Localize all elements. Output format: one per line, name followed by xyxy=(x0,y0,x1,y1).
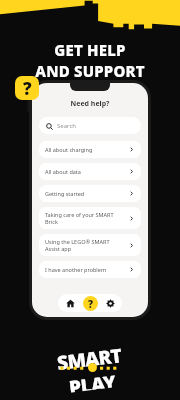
button[interactable]: All about data xyxy=(39,163,141,180)
button[interactable]: Help xyxy=(15,76,39,100)
button[interactable]: Taking care of your SMART xyxy=(39,207,141,229)
staticText: ? xyxy=(88,297,94,311)
staticText: Need help? xyxy=(32,99,148,109)
button[interactable]: I have another problem xyxy=(39,261,141,278)
button[interactable]: Getting started xyxy=(39,185,141,202)
button[interactable]: Using the LEGO® SMART xyxy=(39,234,141,256)
staticText: Brick xyxy=(45,218,58,225)
staticText: AND SUPPORT xyxy=(35,61,145,81)
staticText: All about data xyxy=(45,168,81,175)
staticText: Taking care of your SMART xyxy=(45,211,114,218)
button[interactable]: Search xyxy=(39,117,141,134)
staticText: Using the LEGO® SMART xyxy=(45,238,110,245)
staticText: Getting started xyxy=(45,190,85,197)
staticText: I have another problem xyxy=(45,266,107,273)
button[interactable]: Home xyxy=(62,295,78,311)
staticText: GET HELP xyxy=(54,40,126,60)
staticText: Assist app xyxy=(45,245,72,252)
staticText: ? xyxy=(23,77,32,100)
button[interactable]: Settings xyxy=(102,295,118,311)
staticText: PLAY xyxy=(68,369,116,393)
staticText: Search xyxy=(57,122,76,130)
staticText: SMART xyxy=(56,342,123,376)
button[interactable]: All about charging xyxy=(39,141,141,158)
button[interactable]: Help xyxy=(83,296,98,311)
staticText: All about charging xyxy=(45,146,93,153)
